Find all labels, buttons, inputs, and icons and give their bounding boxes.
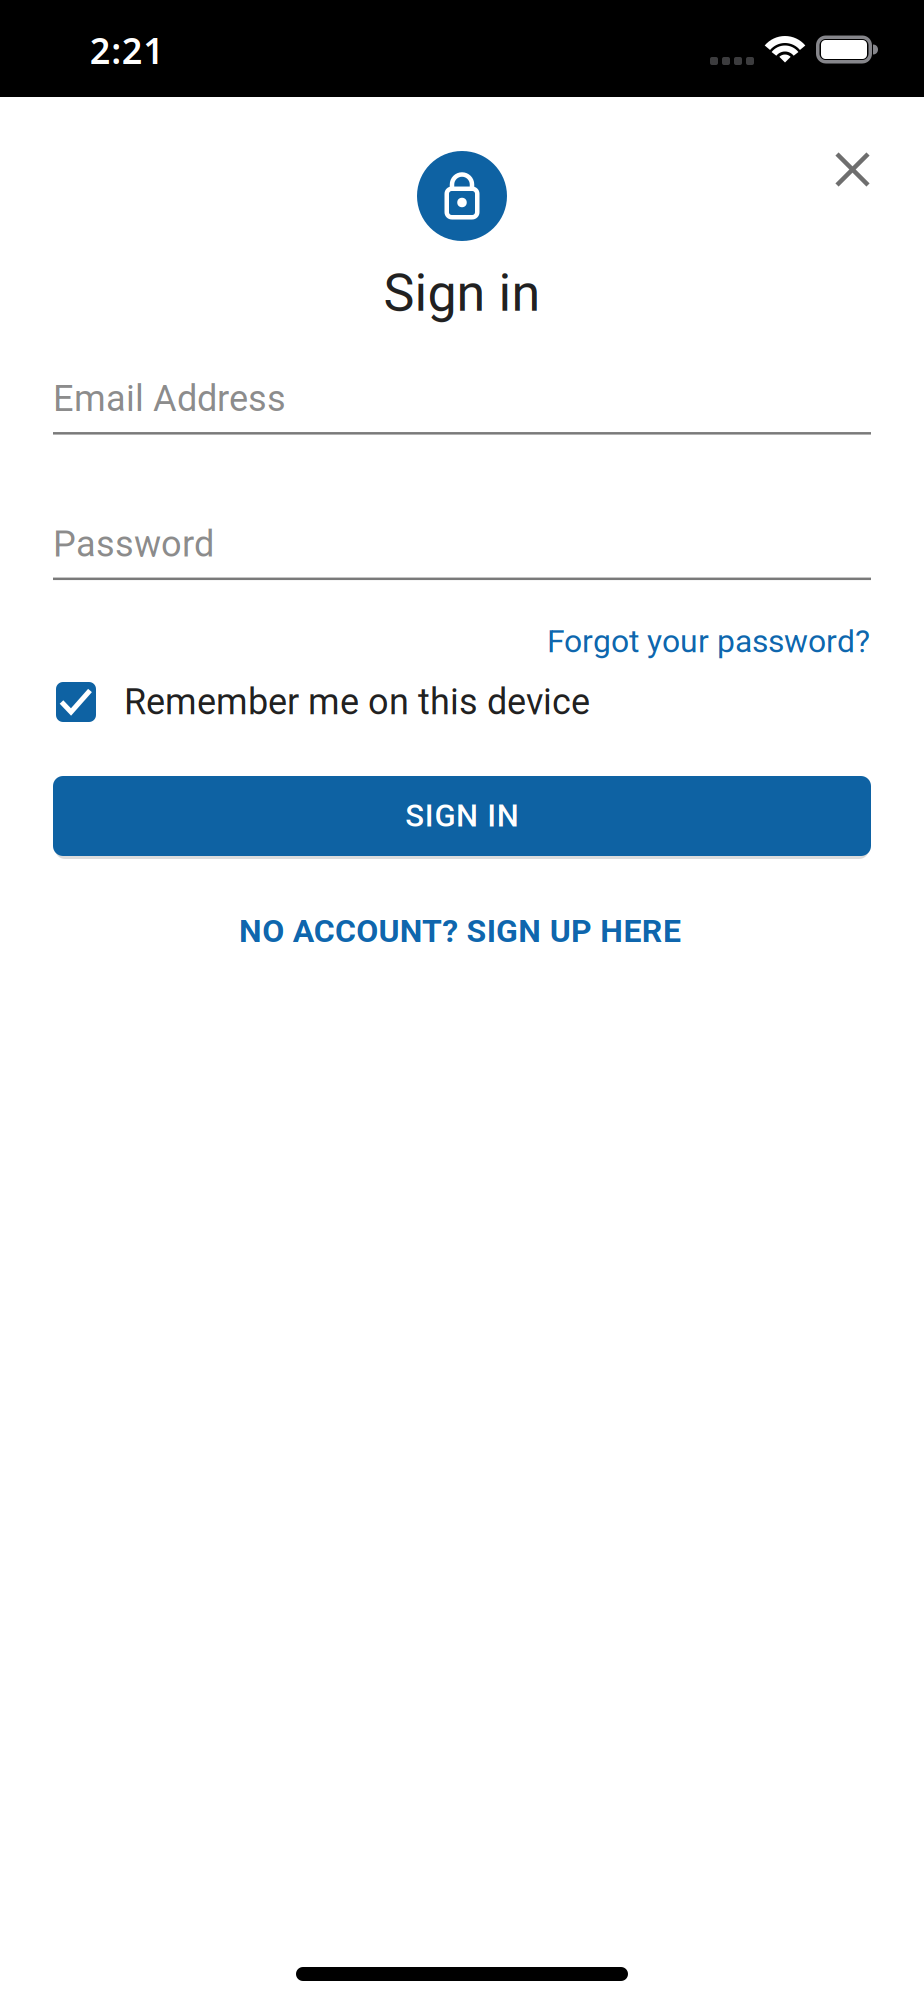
staticText: NO ACCOUNT? SIGN UP HERE xyxy=(239,912,681,950)
staticText: Remember me on this device xyxy=(124,681,590,723)
staticText: Sign in xyxy=(383,262,540,323)
staticText: Password xyxy=(53,523,214,565)
button[interactable]: Forgot your password? xyxy=(547,623,870,660)
staticText: Email Address xyxy=(53,377,286,420)
staticText: Forgot your password? xyxy=(547,623,870,660)
button[interactable]: NO ACCOUNT? SIGN UP HERE xyxy=(239,912,681,950)
staticText: 2:21 xyxy=(90,26,164,74)
button[interactable]: Close xyxy=(823,140,882,199)
button[interactable]: Remember me on this device xyxy=(0,681,924,723)
staticText: SIGN IN xyxy=(405,798,519,834)
button[interactable]: SIGN IN xyxy=(53,776,871,856)
button[interactable]: Email Address xyxy=(53,377,871,434)
button[interactable]: Password xyxy=(53,523,871,580)
